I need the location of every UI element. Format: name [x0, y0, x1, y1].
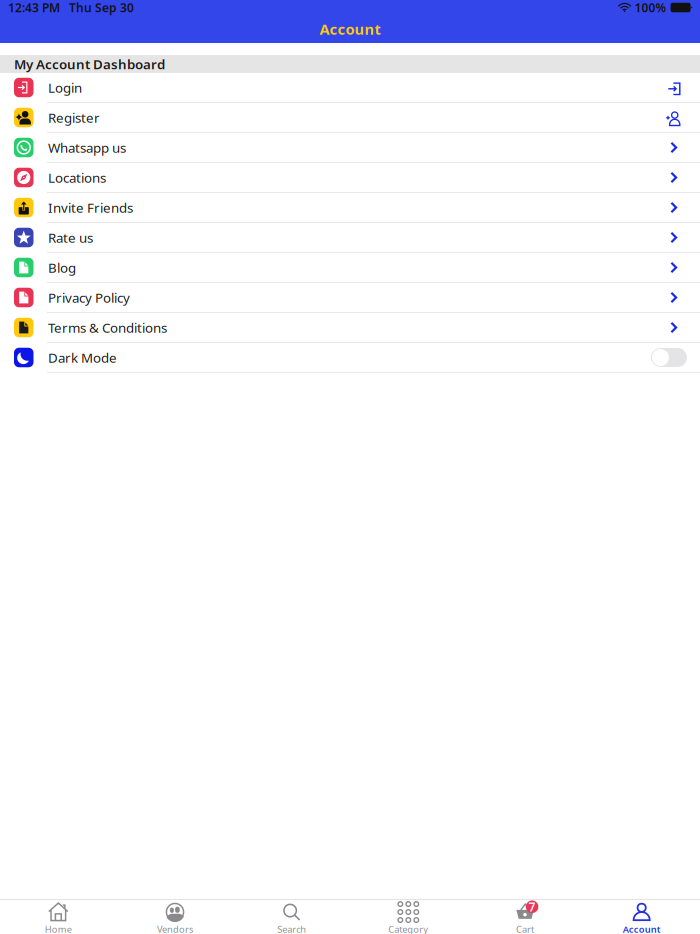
staticText: Blog	[48, 259, 76, 276]
button[interactable]: Invite Friends	[0, 193, 700, 223]
staticText: 12:43 PM	[8, 0, 60, 15]
button[interactable]: Vendors	[117, 899, 233, 934]
staticText: Dark Mode	[48, 349, 117, 366]
button[interactable]: Account	[583, 899, 700, 934]
staticText: Rate us	[48, 229, 93, 246]
button[interactable]: Home	[0, 899, 117, 934]
staticText: Terms & Conditions	[48, 319, 167, 336]
staticText: Locations	[48, 169, 106, 186]
button[interactable]: 7	[467, 899, 583, 934]
button[interactable]: Whatsapp us	[0, 133, 700, 163]
button[interactable]: Blog	[0, 253, 700, 283]
button[interactable]: Locations	[0, 163, 700, 193]
staticText: Account	[319, 19, 380, 39]
button[interactable]: Privacy Policy	[0, 283, 700, 313]
staticText: My Account Dashboard	[14, 55, 165, 73]
button[interactable]: Dark Mode	[0, 343, 700, 373]
staticText: Register	[48, 109, 100, 126]
staticText: Privacy Policy	[48, 289, 130, 306]
staticText: Category	[388, 923, 428, 934]
staticText: Invite Friends	[48, 199, 133, 216]
button[interactable]: Terms & Conditions	[0, 313, 700, 343]
button[interactable]: Category	[350, 899, 467, 934]
staticText: Login	[48, 79, 82, 96]
staticText: Whatsapp us	[48, 139, 126, 156]
staticText: 100%	[635, 0, 667, 15]
staticText: Vendors	[157, 923, 193, 934]
staticText: 7	[529, 899, 536, 915]
staticText: Home	[45, 923, 72, 934]
button[interactable]: Login	[0, 73, 700, 103]
button[interactable]: Rate us	[0, 223, 700, 253]
staticText: Cart	[516, 923, 534, 934]
button[interactable]: Register	[0, 103, 700, 133]
staticText: Search	[277, 923, 306, 934]
staticText: Thu Sep 30	[69, 0, 134, 15]
staticText: Account	[623, 923, 661, 934]
button[interactable]: Search	[233, 899, 350, 934]
